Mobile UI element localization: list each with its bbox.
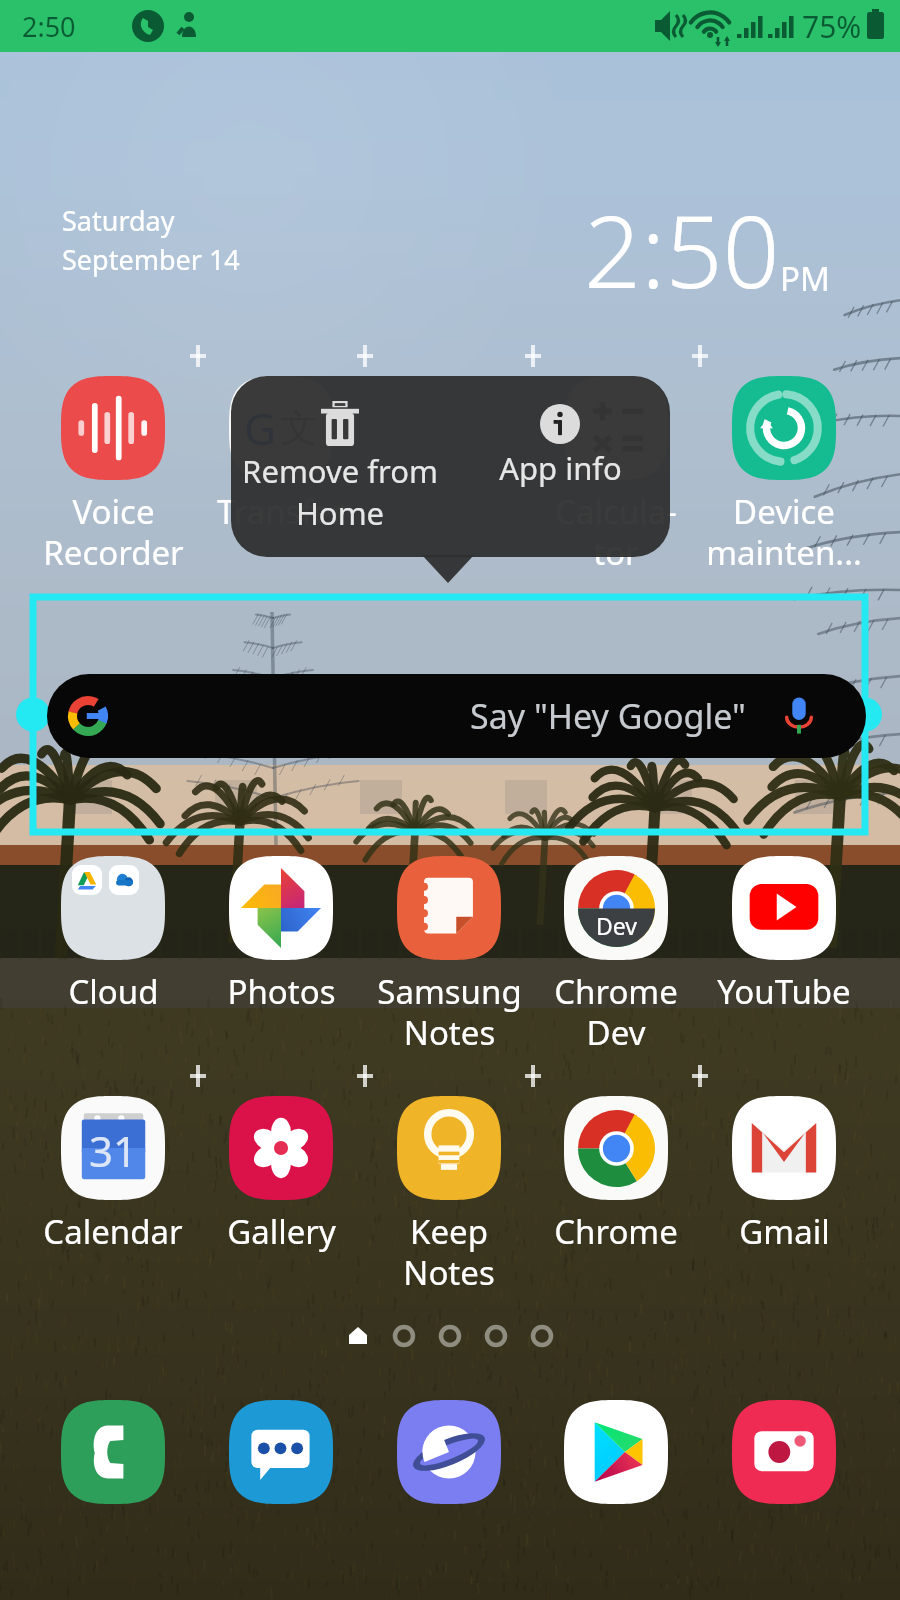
staticText: Gmail: [739, 1209, 830, 1254]
button[interactable]: Keep Notes: [365, 1096, 533, 1295]
button[interactable]: Samsung Notes: [365, 856, 533, 1055]
staticText: Voice Recorder: [43, 489, 184, 575]
button[interactable]: Chrome: [532, 1096, 700, 1254]
staticText: App info: [499, 447, 622, 489]
button[interactable]: YouTube: [700, 856, 868, 1014]
button[interactable]: Photos: [197, 856, 365, 1014]
button[interactable]: Play Store: [564, 1400, 668, 1504]
button[interactable]: Remove from Home: [240, 390, 440, 550]
staticText: Calendar: [43, 1209, 183, 1254]
staticText: Calcula- tor: [555, 489, 677, 575]
button[interactable]: Gallery: [197, 1096, 365, 1254]
button[interactable]: Camera: [732, 1400, 836, 1504]
staticText: Saturday September 14: [62, 202, 240, 278]
staticText: Gallery: [227, 1209, 336, 1254]
staticText: 2:50: [584, 181, 780, 317]
button[interactable]: Device mainten...: [700, 376, 868, 575]
staticText: 31: [89, 1122, 138, 1179]
staticText: G: [244, 398, 277, 458]
staticText: Remove from Home: [242, 450, 438, 534]
button[interactable]: Cloud: [29, 856, 197, 1014]
button[interactable]: Phone: [61, 1400, 165, 1504]
button[interactable]: Calcula- tor: [532, 376, 700, 575]
staticText: Dev: [596, 910, 637, 941]
button[interactable]: Internet: [397, 1400, 501, 1504]
staticText: PM: [780, 256, 830, 301]
staticText: Transfer: [217, 489, 345, 534]
staticText: Keep Notes: [403, 1209, 495, 1295]
button[interactable]: Voice Recorder: [29, 376, 197, 575]
button[interactable]: Messages: [229, 1400, 333, 1504]
staticText: Device mainten...: [706, 489, 862, 575]
staticText: Say "Hey Google": [470, 693, 746, 739]
staticText: Chrome: [554, 1209, 678, 1254]
staticText: Cloud: [68, 969, 159, 1014]
staticText: Chrome Dev: [554, 969, 678, 1055]
button[interactable]: Gmail: [700, 1096, 868, 1254]
button[interactable]: App info: [470, 390, 650, 550]
staticText: 2:50: [22, 8, 76, 45]
staticText: Samsung Notes: [377, 969, 522, 1055]
staticText: Photos: [227, 969, 336, 1014]
button[interactable]: Say "Hey Google": [47, 674, 866, 758]
staticText: 75%: [802, 6, 862, 47]
staticText: YouTube: [717, 969, 851, 1014]
button[interactable]: G: [197, 376, 365, 534]
button[interactable]: Dev: [532, 856, 700, 1055]
button[interactable]: 31: [29, 1096, 197, 1254]
